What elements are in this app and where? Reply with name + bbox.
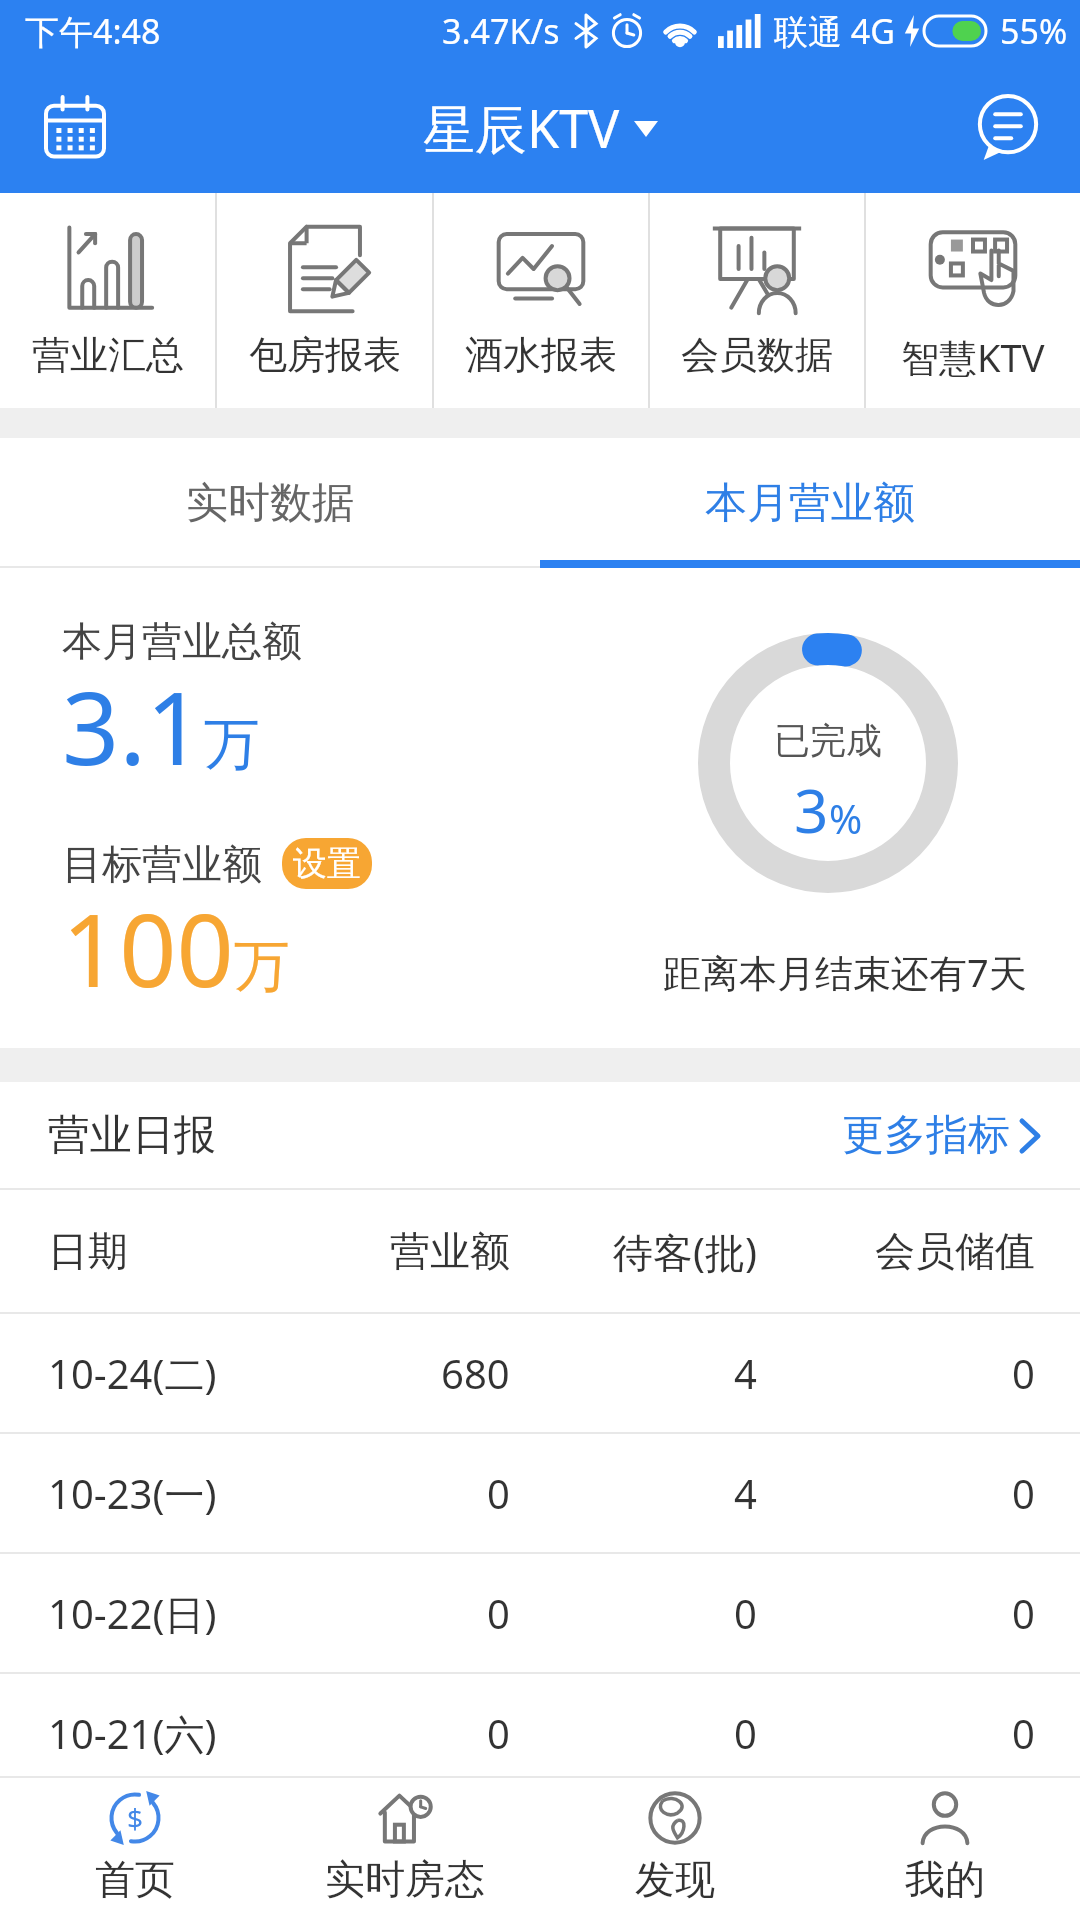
staticText: 10-24(二)	[48, 1346, 217, 1401]
staticText: 3.1	[62, 658, 204, 794]
staticText: 0	[487, 1586, 510, 1640]
staticText: 联通 4G	[774, 8, 896, 54]
staticText: 目标营业额	[62, 839, 262, 889]
staticText: 0	[734, 1706, 757, 1760]
staticText: 4	[734, 1466, 757, 1520]
staticText: 酒水报表	[465, 331, 617, 379]
button[interactable]: 实时数据	[0, 438, 540, 568]
button[interactable]: 实时房态	[270, 1778, 540, 1920]
button[interactable]: 本月营业额	[540, 438, 1080, 568]
button[interactable]: 设置	[282, 838, 372, 889]
staticText: 更多指标	[842, 1109, 1010, 1162]
staticText: 包房报表	[249, 331, 401, 379]
button[interactable]: $	[0, 1778, 270, 1920]
staticText: 本月营业总额	[62, 616, 302, 666]
staticText: 3	[794, 769, 829, 851]
staticText: 距离本月结束还有7天	[663, 946, 1027, 998]
button[interactable]	[44, 97, 106, 159]
button[interactable]: 日期	[0, 1190, 1080, 1312]
button[interactable]: 智慧KTV	[866, 193, 1080, 408]
staticText: 0	[734, 1586, 757, 1640]
staticText: 10-22(日)	[48, 1586, 217, 1641]
staticText: 下午4:48	[25, 8, 161, 54]
staticText: 万	[204, 709, 260, 780]
staticText: 680	[441, 1346, 510, 1400]
staticText: 设置	[293, 842, 361, 885]
staticText: 0	[1012, 1466, 1035, 1520]
staticText: 0	[1012, 1586, 1035, 1640]
staticText: 0	[1012, 1706, 1035, 1760]
staticText: 0	[487, 1466, 510, 1520]
button[interactable]: 营业汇总	[0, 193, 215, 408]
button[interactable]: 10-21(六)	[0, 1674, 1080, 1792]
staticText: 智慧KTV	[901, 331, 1045, 383]
staticText: $	[127, 1799, 144, 1837]
button[interactable]: 会员数据	[650, 193, 864, 408]
staticText: 10-23(一)	[48, 1466, 217, 1521]
button[interactable]	[976, 96, 1040, 160]
staticText: 已完成	[774, 718, 882, 763]
button[interactable]: 酒水报表	[434, 193, 648, 408]
staticText: 发现	[635, 1854, 715, 1904]
staticText: 4	[734, 1346, 757, 1400]
staticText: 营业额	[390, 1226, 510, 1276]
staticText: 待客(批)	[613, 1224, 757, 1279]
staticText: 首页	[95, 1854, 175, 1904]
staticText: 万	[234, 931, 290, 1002]
button[interactable]: 发现	[540, 1778, 810, 1920]
button[interactable]: 更多指标	[842, 1109, 1040, 1162]
button[interactable]: 10-22(日)	[0, 1554, 1080, 1672]
staticText: 55%	[1000, 8, 1068, 54]
staticText: 0	[1012, 1346, 1035, 1400]
staticText: 营业日报	[48, 1109, 216, 1162]
staticText: 10-21(六)	[48, 1706, 217, 1761]
staticText: 营业汇总	[32, 331, 184, 379]
button[interactable]: 10-24(二)	[0, 1314, 1080, 1432]
staticText: 3.47K/s	[442, 8, 560, 54]
button[interactable]: 包房报表	[217, 193, 432, 408]
staticText: 星辰KTV	[423, 92, 620, 163]
staticText: 100	[62, 880, 234, 1016]
staticText: %	[829, 791, 863, 845]
staticText: 我的	[905, 1854, 985, 1904]
staticText: 日期	[48, 1226, 128, 1276]
staticText: 0	[487, 1706, 510, 1760]
button[interactable]: 10-23(一)	[0, 1434, 1080, 1552]
staticText: 本月营业额	[705, 477, 915, 530]
staticText: 实时数据	[186, 477, 354, 530]
staticText: 实时房态	[325, 1854, 485, 1904]
staticText: 会员储值	[875, 1226, 1035, 1276]
button[interactable]: 星辰KTV	[423, 92, 658, 163]
staticText: 会员数据	[681, 331, 833, 379]
button[interactable]: 我的	[810, 1778, 1080, 1920]
